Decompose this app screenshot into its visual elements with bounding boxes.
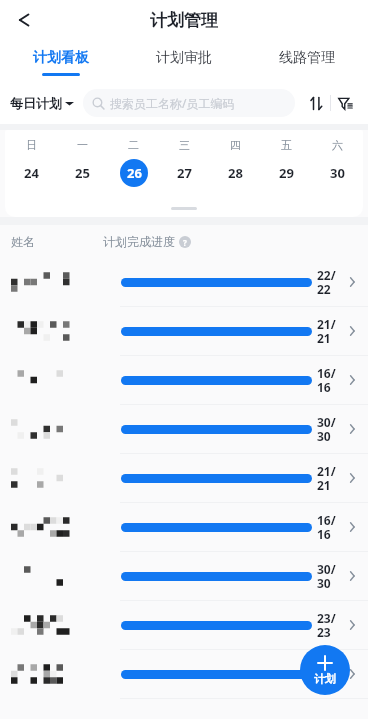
staticText: 计划管理	[150, 10, 218, 31]
staticText: 16/16	[317, 365, 341, 396]
button[interactable]: 28	[210, 159, 261, 187]
button[interactable]: 计划	[300, 645, 350, 695]
button[interactable]: 每日计划	[8, 95, 76, 111]
staticText: 姓名	[11, 234, 35, 249]
staticText: 28	[228, 164, 243, 182]
button[interactable]: 25	[57, 159, 108, 187]
button[interactable]: 搜索员工名称/员工编码	[83, 89, 295, 117]
staticText: 16/16	[317, 512, 341, 543]
other: Details	[344, 323, 360, 339]
staticText: 26	[127, 164, 142, 182]
staticText: 30/30	[317, 414, 341, 445]
staticText: 线路管理	[279, 49, 335, 67]
staticText: 计划完成进度	[103, 234, 175, 249]
staticText: 21/21	[317, 463, 341, 494]
staticText: 二	[128, 138, 139, 152]
staticText: 一	[77, 138, 88, 152]
other: Details	[344, 519, 360, 535]
staticText: 日	[26, 138, 37, 152]
staticText: 27	[177, 164, 192, 182]
button[interactable]: 30/30	[0, 552, 368, 601]
staticText: 21/21	[317, 316, 341, 347]
staticText: 搜索员工名称/员工编码	[110, 95, 235, 111]
staticText: 计划审批	[156, 49, 212, 67]
other: Details	[344, 666, 360, 682]
staticText: 计划看板	[33, 49, 89, 67]
other: Details	[344, 372, 360, 388]
button[interactable]: Filter	[331, 96, 360, 111]
button[interactable]: 22/22	[0, 258, 368, 307]
button[interactable]: 30/30	[0, 405, 368, 454]
button[interactable]: 计划审批	[122, 40, 245, 82]
other: Details	[344, 470, 360, 486]
button[interactable]: 21/21	[0, 454, 368, 503]
other: Details	[344, 568, 360, 584]
button[interactable]: 27	[159, 159, 210, 187]
button[interactable]: Back	[6, 3, 40, 37]
staticText: ?	[183, 237, 187, 248]
button[interactable]: Help	[179, 236, 191, 248]
other: Details	[344, 617, 360, 633]
staticText: 计划	[314, 672, 336, 686]
other: Details	[344, 274, 360, 290]
button[interactable]: 30	[312, 159, 363, 187]
button[interactable]: 线路管理	[245, 40, 368, 82]
staticText: 30/30	[317, 561, 341, 592]
other: Details	[344, 421, 360, 437]
button[interactable]: 29	[261, 159, 312, 187]
staticText: 三	[179, 138, 190, 152]
staticText: 四	[230, 138, 241, 152]
button[interactable]: 16/16	[0, 356, 368, 405]
button[interactable]: Sort	[302, 96, 330, 111]
button[interactable]: 23/23	[0, 601, 368, 650]
staticText: 22/22	[317, 267, 341, 298]
button[interactable]: 26	[108, 159, 159, 187]
button[interactable]: 21/21	[0, 307, 368, 356]
staticText: 六	[332, 138, 343, 152]
staticText: 16/16	[317, 659, 341, 690]
staticText: 30	[330, 164, 345, 182]
staticText: 23/23	[317, 610, 341, 641]
button[interactable]: 16/16	[0, 503, 368, 552]
staticText: 25	[75, 164, 90, 182]
staticText: 五	[281, 138, 292, 152]
staticText: 29	[279, 164, 294, 182]
button[interactable]: 计划看板	[0, 40, 122, 82]
button[interactable]: 16/16	[0, 650, 368, 699]
button[interactable]: 24	[5, 159, 57, 187]
staticText: 24	[24, 164, 39, 182]
staticText: 每日计划	[10, 95, 62, 111]
